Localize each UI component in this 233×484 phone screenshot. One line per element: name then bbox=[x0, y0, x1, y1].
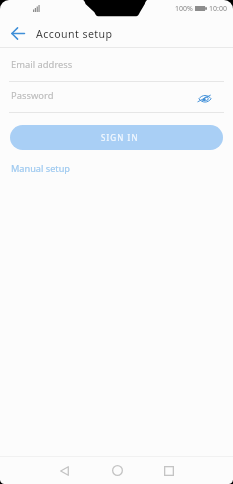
staticText: Account setup bbox=[36, 27, 113, 41]
staticText: SIGN IN bbox=[101, 132, 139, 143]
staticText: Email address bbox=[11, 58, 73, 71]
button[interactable]: Back bbox=[52, 458, 77, 483]
button[interactable]: Recents bbox=[156, 458, 181, 483]
staticText: 10:00 bbox=[209, 4, 227, 14]
button[interactable]: SIGN IN bbox=[10, 125, 223, 150]
staticText: Password bbox=[11, 89, 54, 102]
button[interactable]: Home bbox=[105, 458, 130, 483]
button[interactable]: Manual setup bbox=[5, 158, 76, 179]
staticText: 100% bbox=[175, 4, 193, 14]
staticText: Manual setup bbox=[11, 162, 70, 175]
button[interactable]: Show password bbox=[195, 88, 215, 108]
button[interactable]: Back bbox=[2, 17, 34, 49]
